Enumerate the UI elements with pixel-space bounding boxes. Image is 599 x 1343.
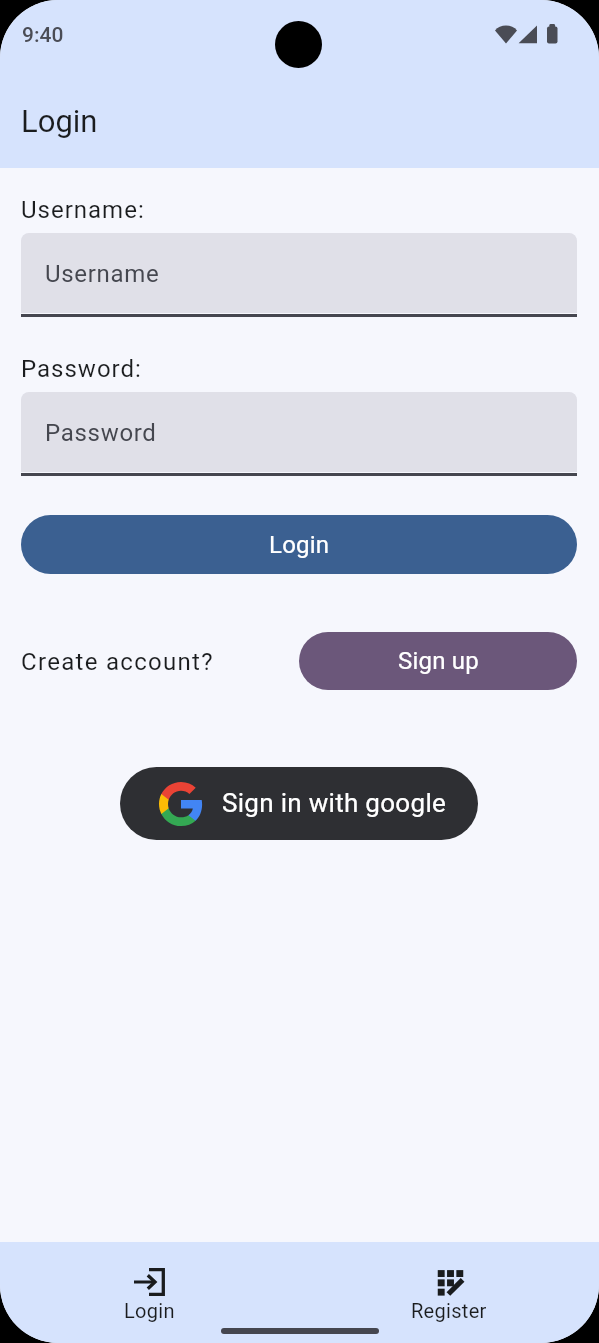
button[interactable]: Password bbox=[21, 392, 577, 475]
staticText: 9:40 bbox=[22, 23, 64, 48]
button[interactable]: Register bbox=[299, 1242, 599, 1332]
staticText: Register bbox=[411, 1299, 487, 1322]
staticText: Username: bbox=[21, 196, 145, 224]
staticText: Create account? bbox=[21, 648, 214, 676]
staticText: Login bbox=[269, 531, 330, 559]
staticText: Login bbox=[124, 1299, 175, 1322]
staticText: Password bbox=[45, 419, 157, 447]
button[interactable]: Sign up bbox=[299, 632, 577, 690]
button[interactable]: Login bbox=[21, 515, 577, 574]
button[interactable]: Sign in with google bbox=[120, 767, 478, 840]
button[interactable]: Username bbox=[21, 233, 577, 316]
staticText: Password: bbox=[21, 355, 142, 383]
staticText: Username bbox=[45, 260, 160, 288]
button[interactable]: Login bbox=[0, 1242, 299, 1332]
staticText: Sign in with google bbox=[222, 788, 447, 818]
staticText: Sign up bbox=[398, 647, 479, 675]
staticText: Login bbox=[21, 103, 98, 139]
